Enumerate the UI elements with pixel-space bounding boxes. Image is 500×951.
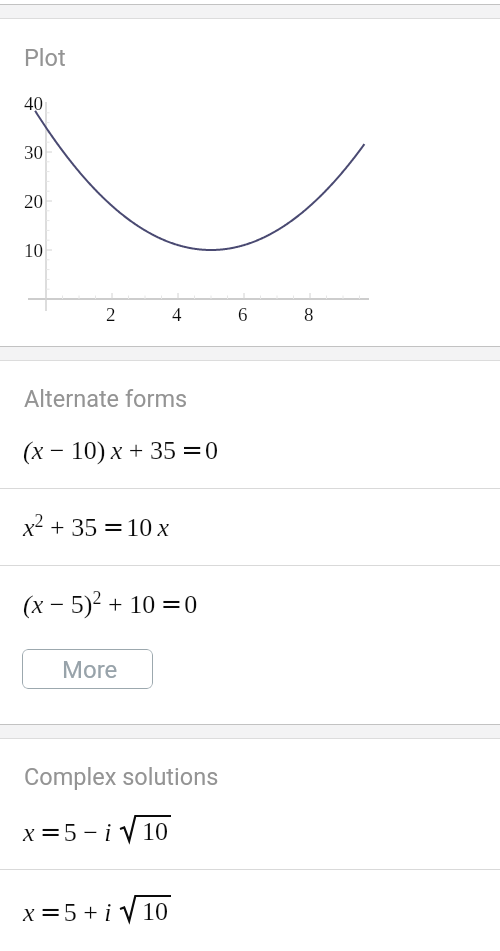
- button[interactable]: More: [22, 649, 153, 689]
- staticText: 40: [24, 93, 43, 114]
- staticText: (x − 5)2 + 10 = 0: [23, 588, 198, 619]
- button[interactable]: (x - 10) x + 35 = 0: [0, 415, 500, 488]
- staticText: 4: [172, 304, 182, 325]
- staticText: 10: [142, 897, 168, 926]
- button[interactable]: (x - 5) squared + 10 = 0: [0, 566, 500, 643]
- button[interactable]: Plot: [0, 19, 500, 346]
- staticText: x2 + 35 = 10 x: [23, 511, 170, 542]
- staticText: x = 5 − i: [23, 817, 112, 847]
- staticText: Plot: [24, 44, 66, 72]
- staticText: (x − 10) x + 35 = 0: [23, 435, 219, 465]
- staticText: 10: [142, 817, 168, 846]
- staticText: 10: [24, 240, 43, 261]
- staticText: More: [62, 656, 118, 684]
- staticText: x = 5 + i: [23, 897, 112, 927]
- staticText: 20: [24, 191, 43, 212]
- staticText: Complex solutions: [24, 763, 219, 791]
- staticText: 2: [106, 304, 116, 325]
- staticText: Alternate forms: [24, 385, 188, 413]
- staticText: 8: [304, 304, 314, 325]
- button[interactable]: x squared + 35 = 10 x: [0, 489, 500, 565]
- button[interactable]: x = 5 + i square root of 10: [0, 870, 500, 951]
- button[interactable]: x = 5 - i square root of 10: [0, 740, 500, 869]
- staticText: 30: [24, 142, 43, 163]
- staticText: 6: [238, 304, 248, 325]
